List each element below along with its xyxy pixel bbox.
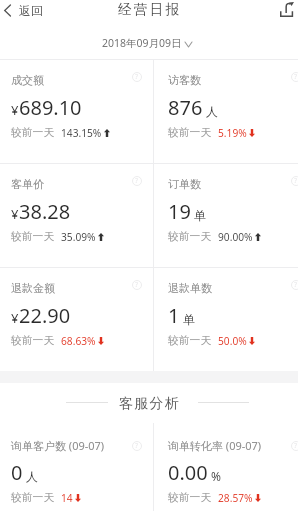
- button[interactable]: 说明: [130, 70, 144, 84]
- button[interactable]: 说明: [289, 70, 298, 84]
- staticText: ¥: [11, 309, 19, 327]
- staticText: 22.90: [19, 302, 71, 329]
- staticText: 较前一天: [168, 230, 212, 244]
- button[interactable]: 说明: [289, 278, 298, 292]
- button[interactable]: 成交额: [0, 60, 153, 163]
- button[interactable]: 返回: [4, 0, 43, 21]
- staticText: 0.00: [168, 459, 208, 486]
- button[interactable]: 退款金额: [0, 268, 153, 371]
- staticText: ?: [135, 280, 139, 290]
- button[interactable]: 退款单数: [154, 268, 298, 371]
- staticText: 143.15%: [61, 126, 102, 140]
- staticText: 询单转化率 (09-07): [168, 438, 262, 453]
- staticText: 5.19%: [218, 126, 247, 140]
- staticText: ?: [294, 176, 298, 186]
- staticText: 0: [11, 459, 23, 486]
- staticText: ?: [135, 441, 139, 451]
- button[interactable]: 访客数: [154, 60, 298, 163]
- staticText: 较前一天: [168, 334, 212, 348]
- staticText: ?: [294, 280, 298, 290]
- staticText: 询单客户数 (09-07): [11, 438, 105, 453]
- staticText: 2018年09月09日: [102, 36, 182, 50]
- staticText: 14: [61, 491, 73, 505]
- staticText: 19: [168, 198, 191, 225]
- staticText: ¥: [11, 101, 19, 119]
- staticText: 返回: [19, 3, 43, 18]
- staticText: %: [211, 468, 221, 484]
- staticText: 单: [183, 312, 195, 327]
- staticText: 退款金额: [11, 281, 55, 295]
- staticText: 经营日报: [118, 1, 182, 18]
- staticText: ?: [135, 176, 139, 186]
- staticText: 50.0%: [218, 334, 247, 348]
- staticText: 90.00%: [218, 230, 253, 244]
- button[interactable]: 说明: [130, 439, 144, 453]
- staticText: 客服分析: [119, 395, 181, 413]
- staticText: ?: [294, 72, 298, 82]
- staticText: 成交额: [11, 73, 44, 87]
- staticText: 较前一天: [168, 126, 212, 140]
- staticText: 较前一天: [11, 126, 55, 140]
- staticText: 较前一天: [11, 334, 55, 348]
- staticText: 689.10: [19, 94, 82, 121]
- staticText: 单: [194, 208, 206, 223]
- staticText: 人: [206, 104, 218, 119]
- staticText: 35.09%: [61, 230, 96, 244]
- staticText: 1: [168, 302, 180, 329]
- button[interactable]: 说明: [289, 439, 298, 453]
- staticText: 退款单数: [168, 281, 212, 295]
- staticText: ¥: [11, 205, 19, 223]
- staticText: 客单价: [11, 177, 44, 191]
- staticText: 较前一天: [168, 491, 212, 505]
- staticText: 人: [26, 469, 38, 484]
- button[interactable]: 询单转化率 (09-07): [154, 423, 298, 511]
- button[interactable]: 说明: [289, 174, 298, 188]
- button[interactable]: 订单数: [154, 164, 298, 267]
- staticText: 38.28: [19, 198, 71, 225]
- button[interactable]: 询单客户数 (09-07): [0, 423, 153, 511]
- staticText: ?: [135, 72, 139, 82]
- staticText: 访客数: [168, 73, 201, 87]
- staticText: 876: [168, 94, 203, 121]
- staticText: 68.63%: [61, 334, 96, 348]
- staticText: 订单数: [168, 177, 201, 191]
- button[interactable]: 2018年09月09日: [0, 26, 298, 59]
- staticText: ?: [294, 441, 298, 451]
- button[interactable]: 分享: [276, 0, 298, 20]
- staticText: 较前一天: [11, 491, 55, 505]
- button[interactable]: 说明: [130, 278, 144, 292]
- staticText: 28.57%: [218, 491, 253, 505]
- button[interactable]: 说明: [130, 174, 144, 188]
- staticText: 较前一天: [11, 230, 55, 244]
- button[interactable]: 客单价: [0, 164, 153, 267]
